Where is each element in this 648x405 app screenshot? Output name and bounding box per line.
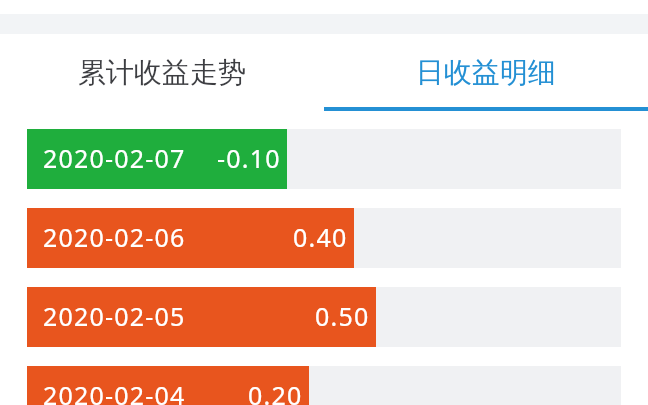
staticText: 2020-02-07 — [43, 141, 186, 175]
staticText: 日收益明细 — [416, 55, 556, 90]
button[interactable]: 累计收益走势 — [0, 34, 324, 111]
staticText: 0.20 — [248, 378, 303, 405]
staticText: 2020-02-04 — [43, 378, 186, 405]
staticText: -0.10 — [217, 141, 281, 175]
staticText: 0.50 — [315, 299, 370, 333]
staticText: 2020-02-05 — [43, 299, 186, 333]
staticText: 2020-02-06 — [43, 220, 186, 254]
button[interactable]: 2020-02-06 — [27, 208, 621, 268]
button[interactable]: 2020-02-07 — [27, 129, 621, 189]
button[interactable]: 日收益明细 — [324, 34, 648, 111]
button[interactable]: 2020-02-04 — [27, 366, 621, 405]
button[interactable]: 2020-02-05 — [27, 287, 621, 347]
staticText: 0.40 — [293, 220, 348, 254]
staticText: 累计收益走势 — [78, 55, 246, 90]
